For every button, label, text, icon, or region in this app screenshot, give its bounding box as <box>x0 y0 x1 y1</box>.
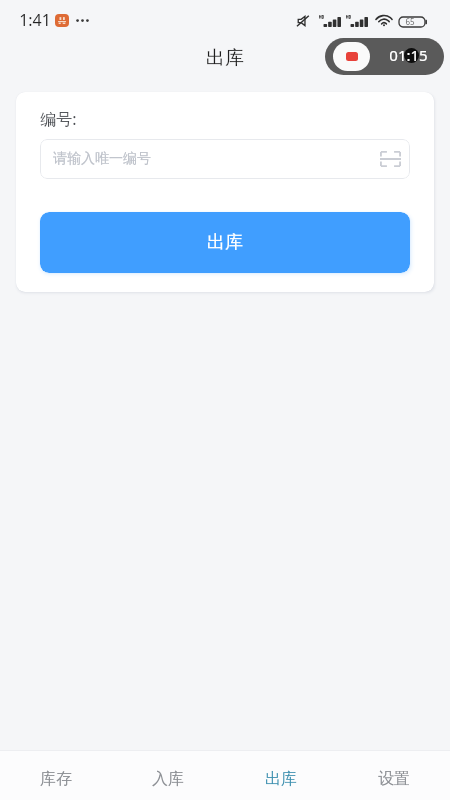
button[interactable]: Scan barcode <box>380 139 401 179</box>
button[interactable]: Screen recording 01:15 <box>325 38 444 75</box>
button[interactable]: 请输入唯一编号 <box>40 139 410 179</box>
staticText: 出库 <box>265 769 297 789</box>
staticText: 出库 <box>206 46 244 70</box>
button[interactable]: 出库 <box>40 212 410 273</box>
button[interactable]: 库存 <box>0 751 112 800</box>
staticText: 设置 <box>378 769 410 789</box>
staticText: 库存 <box>40 769 72 789</box>
staticText: 入库 <box>152 769 184 789</box>
staticText: 请输入唯一编号 <box>53 150 151 168</box>
staticText: 1:41 <box>19 9 51 31</box>
button[interactable]: 设置 <box>337 751 450 800</box>
staticText: 65 <box>405 16 415 27</box>
button[interactable]: 入库 <box>112 751 224 800</box>
staticText: 编号: <box>40 108 77 130</box>
staticText: 出库 <box>207 231 243 254</box>
button[interactable]: 出库 <box>224 751 337 800</box>
staticText: 01:15 <box>389 45 428 65</box>
